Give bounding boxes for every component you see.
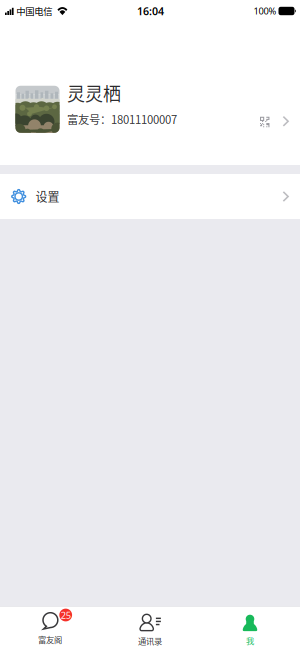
staticText: 富友阁 [38,633,62,645]
staticText: 通讯录 [138,635,162,647]
staticText: 富友号：18011100007 [67,111,177,127]
button[interactable]: 灵灵栖, 富友号 18011100007 [0,22,300,165]
staticText: 设置 [35,188,59,205]
staticText: 100% [253,5,276,17]
button[interactable]: 我 [200,605,300,649]
staticText: 25 [61,609,71,621]
button[interactable]: 设置 [0,174,300,219]
staticText: 16:04 [137,4,164,18]
button[interactable]: 通讯录 [100,605,200,649]
staticText: 中国电信 [16,4,52,18]
staticText: 我 [246,635,254,647]
button[interactable]: 25 [0,606,100,649]
staticText: 灵灵栖 [67,80,121,106]
